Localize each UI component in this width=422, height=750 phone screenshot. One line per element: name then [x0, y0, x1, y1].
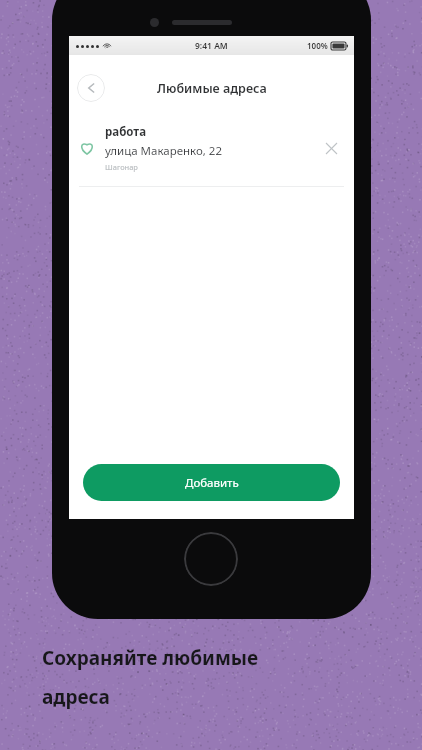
button[interactable]: Remove address: [320, 137, 342, 159]
staticText: 9:41 AM: [195, 40, 228, 52]
staticText: 100%: [307, 40, 328, 51]
staticText: Сохраняйте любимые: [42, 645, 259, 671]
button[interactable]: Back: [77, 74, 105, 102]
staticText: адреса: [42, 684, 110, 710]
staticText: Добавить: [185, 475, 239, 491]
staticText: Шагонар: [105, 162, 138, 172]
button[interactable]: Добавить: [83, 464, 340, 501]
staticText: Любимые адреса: [157, 80, 267, 97]
staticText: работа: [105, 124, 147, 140]
staticText: улица Макаренко, 22: [105, 143, 223, 159]
button[interactable]: работа: [69, 120, 354, 178]
